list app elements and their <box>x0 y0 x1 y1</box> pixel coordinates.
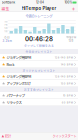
staticText: 00:46:28 <box>25 35 53 43</box>
staticText: 70 BPM <box>63 94 73 97</box>
button[interactable]: 編集 <box>1 5 10 12</box>
staticText: リラックス <box>7 100 22 105</box>
staticText: 統計 <box>5 134 11 138</box>
button[interactable]: パワーナップ <box>0 92 78 99</box>
staticText: クイックスタート <box>52 134 76 138</box>
staticText: オリジナルプレイリスト <box>22 69 55 72</box>
staticText: SoftBank <box>1 1 15 4</box>
staticText: 128-140 BPM <box>55 56 73 59</box>
staticText: アップテンポだけ <box>7 81 31 86</box>
staticText: 12:04 <box>36 1 44 4</box>
staticText: 100 <box>4 30 7 33</box>
staticText: 150 BPM <box>61 82 73 85</box>
button[interactable]: Rock <box>0 61 78 68</box>
staticText: Rock <box>7 62 15 67</box>
staticText: + <box>71 5 75 12</box>
staticText: 今週のトレーニング <box>25 14 52 18</box>
staticText: おすすめプレイリスト <box>24 88 54 91</box>
staticText: 120 <box>4 27 7 29</box>
staticText: 編集 <box>1 6 9 11</box>
staticText: HiTempo Player <box>21 6 56 11</box>
staticText: パワーナップ <box>7 93 25 98</box>
button[interactable]: クイックスタート <box>51 132 78 140</box>
staticText: 今日のプレイリスト <box>25 50 52 53</box>
button[interactable]: Add playlist <box>70 5 77 12</box>
staticText: 今日 <box>4 35 10 39</box>
staticText: 平均BPM <box>66 36 76 39</box>
button[interactable]: 統計 <box>0 132 12 140</box>
staticText: 100% <box>64 1 72 4</box>
staticText: 3.2km <box>2 39 11 43</box>
button[interactable]: リラックス <box>0 99 78 106</box>
staticText: 160 <box>4 20 7 23</box>
button[interactable]: ジョギング用BPM <box>0 73 78 80</box>
staticText: ジョギング用BPM <box>7 74 32 79</box>
staticText: タップして詳細をみる <box>24 43 54 48</box>
staticText: 60 BPM <box>62 101 73 104</box>
staticText: ジョギング用BPM <box>7 55 32 60</box>
staticText: 140 BPM <box>61 63 73 66</box>
button[interactable]: ジョギング用BPM <box>0 54 78 61</box>
button[interactable]: アップテンポだけ <box>0 80 78 87</box>
staticText: 140 <box>4 24 7 26</box>
staticText: 128-140 BPM <box>55 75 73 78</box>
staticText: 128 <box>68 39 73 42</box>
